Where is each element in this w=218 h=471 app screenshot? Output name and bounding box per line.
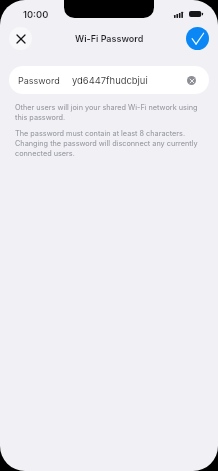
button[interactable]: Close bbox=[9, 27, 32, 50]
button[interactable]: Clear password bbox=[187, 76, 196, 85]
staticText: Other users will join your shared Wi-Fi … bbox=[15, 103, 200, 122]
button[interactable]: Password bbox=[9, 66, 209, 94]
staticText: Password bbox=[18, 75, 60, 86]
button[interactable]: Confirm password bbox=[186, 27, 209, 50]
staticText: yd6447fhudcbjui bbox=[72, 75, 148, 86]
staticText: Wi-Fi Password bbox=[75, 33, 144, 44]
staticText: 10:00 bbox=[23, 9, 49, 20]
staticText: The password must contain at least 8 cha… bbox=[15, 129, 200, 158]
